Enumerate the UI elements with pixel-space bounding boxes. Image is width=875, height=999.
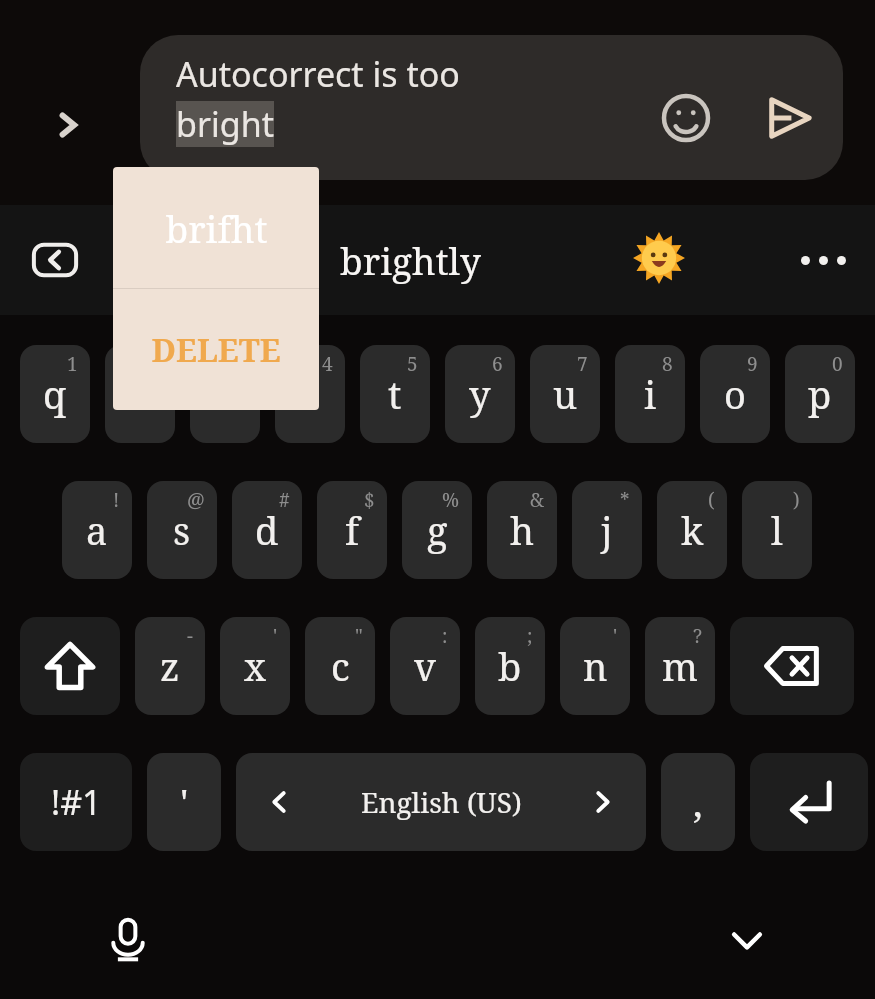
- staticText: 5: [407, 351, 418, 377]
- staticText: t: [388, 368, 402, 420]
- button[interactable]: Backspace: [730, 617, 854, 715]
- button[interactable]: ?: [645, 617, 715, 715]
- staticText: k: [681, 504, 704, 556]
- staticText: bright: [176, 101, 274, 147]
- staticText: a: [86, 504, 108, 556]
- button[interactable]: 7: [530, 345, 600, 443]
- staticText: c: [331, 640, 350, 692]
- staticText: English (US): [361, 783, 522, 821]
- button[interactable]: Autocorrect is too: [140, 35, 843, 180]
- button[interactable]: 3: [190, 345, 260, 443]
- staticText: !#1: [51, 779, 102, 825]
- staticText: p: [808, 368, 832, 420]
- staticText: q: [43, 368, 67, 420]
- staticText: m: [662, 640, 698, 692]
- button[interactable]: brightly: [340, 221, 540, 299]
- button[interactable]: %: [402, 481, 472, 579]
- staticText: (: [708, 487, 715, 513]
- staticText: *: [620, 487, 630, 513]
- staticText: 6: [492, 351, 503, 377]
- button[interactable]: #: [232, 481, 302, 579]
- button[interactable]: Voice input: [96, 908, 160, 972]
- button[interactable]: 8: [615, 345, 685, 443]
- button[interactable]: !#1: [20, 753, 132, 851]
- staticText: ': [180, 776, 189, 828]
- staticText: Autocorrect is too: [176, 51, 460, 97]
- staticText: ?: [693, 623, 703, 649]
- staticText: 2: [152, 351, 163, 377]
- staticText: x: [244, 640, 266, 692]
- staticText: !: [113, 487, 120, 513]
- button[interactable]: *: [572, 481, 642, 579]
- button[interactable]: Hide keyboard: [715, 908, 779, 972]
- staticText: 7: [577, 351, 588, 377]
- staticText: 8: [662, 351, 673, 377]
- staticText: b: [498, 640, 522, 692]
- button[interactable]: ': [220, 617, 290, 715]
- staticText: h: [510, 504, 535, 556]
- button[interactable]: Expand: [38, 95, 98, 155]
- button[interactable]: ': [147, 753, 221, 851]
- staticText: r: [301, 368, 319, 420]
- button[interactable]: brifht: [113, 167, 319, 288]
- staticText: e: [215, 368, 236, 420]
- staticText: %: [442, 487, 460, 513]
- staticText: ": [355, 623, 363, 649]
- staticText: o: [724, 368, 746, 420]
- button[interactable]: Send: [757, 86, 821, 150]
- button[interactable]: :: [390, 617, 460, 715]
- button[interactable]: ): [742, 481, 812, 579]
- button[interactable]: ": [305, 617, 375, 715]
- button[interactable]: Shift: [20, 617, 120, 715]
- button[interactable]: 4: [275, 345, 345, 443]
- button[interactable]: 0: [785, 345, 855, 443]
- staticText: 0: [832, 351, 843, 377]
- staticText: ): [793, 487, 800, 513]
- button[interactable]: ;: [475, 617, 545, 715]
- staticText: ,: [693, 776, 703, 828]
- staticText: l: [771, 504, 783, 556]
- staticText: z: [160, 640, 180, 692]
- button[interactable]: 1: [20, 345, 90, 443]
- button[interactable]: Enter: [750, 753, 868, 851]
- button[interactable]: Previous: [24, 229, 86, 291]
- staticText: u: [553, 368, 578, 420]
- button[interactable]: DELETE: [113, 289, 319, 410]
- staticText: :: [442, 623, 448, 649]
- staticText: 1: [67, 351, 78, 377]
- staticText: ': [273, 623, 278, 649]
- staticText: ;: [527, 623, 533, 649]
- button[interactable]: !: [62, 481, 132, 579]
- button[interactable]: -: [135, 617, 205, 715]
- staticText: brightly: [340, 235, 481, 285]
- staticText: @: [187, 487, 205, 513]
- staticText: n: [583, 640, 608, 692]
- button[interactable]: (: [657, 481, 727, 579]
- staticText: ': [613, 623, 618, 649]
- staticText: g: [427, 504, 448, 556]
- button[interactable]: Sun emoji: [626, 225, 692, 291]
- staticText: brifht: [165, 203, 268, 253]
- button[interactable]: 6: [445, 345, 515, 443]
- button[interactable]: 2: [105, 345, 175, 443]
- button[interactable]: ,: [661, 753, 735, 851]
- staticText: d: [255, 504, 279, 556]
- button[interactable]: English (US): [236, 753, 646, 851]
- staticText: 9: [747, 351, 758, 377]
- staticText: 3: [237, 351, 248, 377]
- button[interactable]: $: [317, 481, 387, 579]
- staticText: y: [469, 368, 491, 420]
- button[interactable]: Emoji: [654, 86, 718, 150]
- staticText: 4: [322, 351, 333, 377]
- staticText: #: [279, 487, 290, 513]
- button[interactable]: More: [790, 227, 856, 293]
- button[interactable]: ': [560, 617, 630, 715]
- button[interactable]: &: [487, 481, 557, 579]
- staticText: DELETE: [151, 328, 281, 372]
- staticText: j: [601, 504, 613, 556]
- button[interactable]: @: [147, 481, 217, 579]
- staticText: -: [187, 623, 193, 649]
- button[interactable]: 9: [700, 345, 770, 443]
- button[interactable]: 5: [360, 345, 430, 443]
- staticText: w: [124, 368, 157, 420]
